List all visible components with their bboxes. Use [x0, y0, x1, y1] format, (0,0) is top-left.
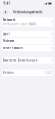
- staticText: Nickname: [3, 39, 15, 43]
- button[interactable]: Back: [3, 10, 8, 15]
- button[interactable]: Erweiterte Einstellungen: [2, 57, 53, 64]
- staticText: Server Passwort: [3, 46, 23, 50]
- button[interactable]: Version: [2, 70, 53, 76]
- staticText: Erweiterte Einstellungen: [3, 59, 38, 62]
- staticText: Verbindungsdetails: [13, 10, 42, 14]
- button[interactable]: Nickname: [2, 38, 53, 44]
- staticText: Verbunden über WLAN: [3, 22, 36, 26]
- button[interactable]: Server Passwort: [2, 45, 53, 51]
- staticText: Netzwerk: [3, 18, 15, 22]
- staticText: 9:41: [4, 2, 11, 5]
- staticText: Version: [3, 71, 14, 74]
- staticText: 1.4.2: [44, 71, 52, 74]
- staticText: Label: [3, 32, 10, 36]
- button[interactable]: Netzwerk: [2, 17, 53, 27]
- button[interactable]: Label: [2, 31, 53, 37]
